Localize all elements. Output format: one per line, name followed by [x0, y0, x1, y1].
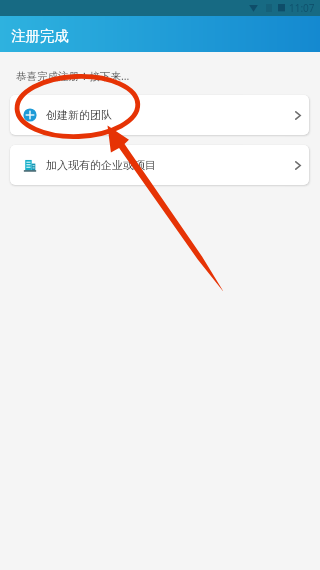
staticText: 注册完成: [11, 27, 69, 45]
staticText: 加入现有的企业或项目: [46, 158, 156, 172]
staticText: 11:07: [289, 1, 315, 15]
button[interactable]: 加入现有的企业或项目: [10, 145, 309, 185]
staticText: 恭喜完成注册！接下来…: [16, 69, 130, 83]
staticText: 创建新的团队: [46, 108, 112, 122]
button[interactable]: 创建新的团队: [10, 95, 309, 135]
